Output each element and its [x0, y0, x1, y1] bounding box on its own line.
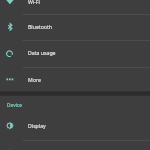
staticText: Bluetooth	[28, 23, 53, 30]
button[interactable]: More	[0, 67, 150, 91]
staticText: Display	[28, 122, 46, 129]
staticText: Wi-Fi	[28, 0, 40, 5]
button[interactable]: Display	[0, 113, 150, 140]
button[interactable]: Wi-Fi	[0, 0, 150, 14]
button[interactable]: Notifications	[0, 140, 150, 150]
button[interactable]: Bluetooth	[0, 14, 150, 40]
button[interactable]: Data usage	[0, 40, 150, 67]
staticText: More	[28, 76, 41, 83]
staticText: Device	[7, 102, 23, 109]
staticText: Data usage	[28, 49, 56, 56]
